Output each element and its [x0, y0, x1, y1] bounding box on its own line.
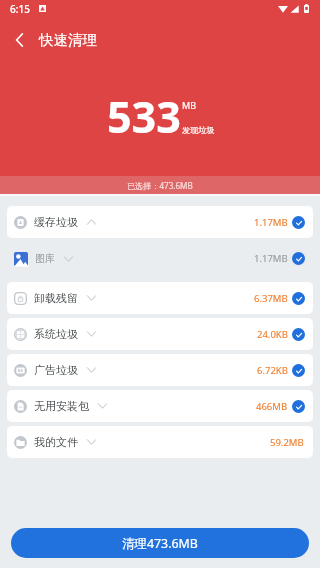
button[interactable]: 无用安装包 — [7, 390, 313, 422]
button[interactable]: 清理473.6MB — [11, 528, 309, 558]
staticText: MB — [182, 99, 197, 111]
staticText: 59.2MB — [270, 436, 304, 449]
staticText: 6.72KB — [257, 364, 288, 377]
button[interactable]: 图库 — [7, 242, 313, 275]
staticText: 1.17MB — [254, 252, 288, 265]
staticText: 6.37MB — [254, 292, 288, 305]
staticText: 已选择：473.6MB — [127, 180, 193, 191]
staticText: 1.17MB — [254, 216, 288, 229]
button[interactable]: 已选中 — [292, 292, 305, 305]
staticText: 清理473.6MB — [122, 535, 198, 552]
staticText: 发现垃圾 — [182, 125, 215, 135]
button[interactable]: 已选中 — [292, 328, 305, 341]
staticText: 图库 — [35, 252, 55, 265]
staticText: 466MB — [256, 400, 288, 413]
staticText: 无用安装包 — [34, 399, 89, 413]
button[interactable]: 已选中 — [292, 216, 305, 229]
button[interactable]: 返回 — [0, 23, 39, 57]
button[interactable]: 我的文件 — [7, 426, 313, 458]
staticText: 24.0KB — [257, 328, 288, 341]
button[interactable]: 系统垃圾 — [7, 318, 313, 350]
staticText: 6:15 — [10, 2, 30, 16]
button[interactable]: 卸载残留 — [7, 282, 313, 314]
button[interactable]: 已选中 — [292, 364, 305, 377]
button[interactable]: 缓存垃圾 — [7, 206, 313, 238]
button[interactable]: 已选中 — [292, 252, 305, 265]
staticText: 系统垃圾 — [34, 327, 78, 341]
button[interactable]: 已选中 — [292, 400, 305, 413]
staticText: 缓存垃圾 — [34, 215, 78, 229]
button[interactable]: 广告垃圾 — [7, 354, 313, 386]
staticText: 快速清理 — [39, 31, 97, 49]
staticText: 我的文件 — [34, 435, 78, 449]
staticText: 卸载残留 — [34, 291, 78, 305]
staticText: 533 — [107, 87, 181, 146]
staticText: 广告垃圾 — [34, 363, 78, 377]
